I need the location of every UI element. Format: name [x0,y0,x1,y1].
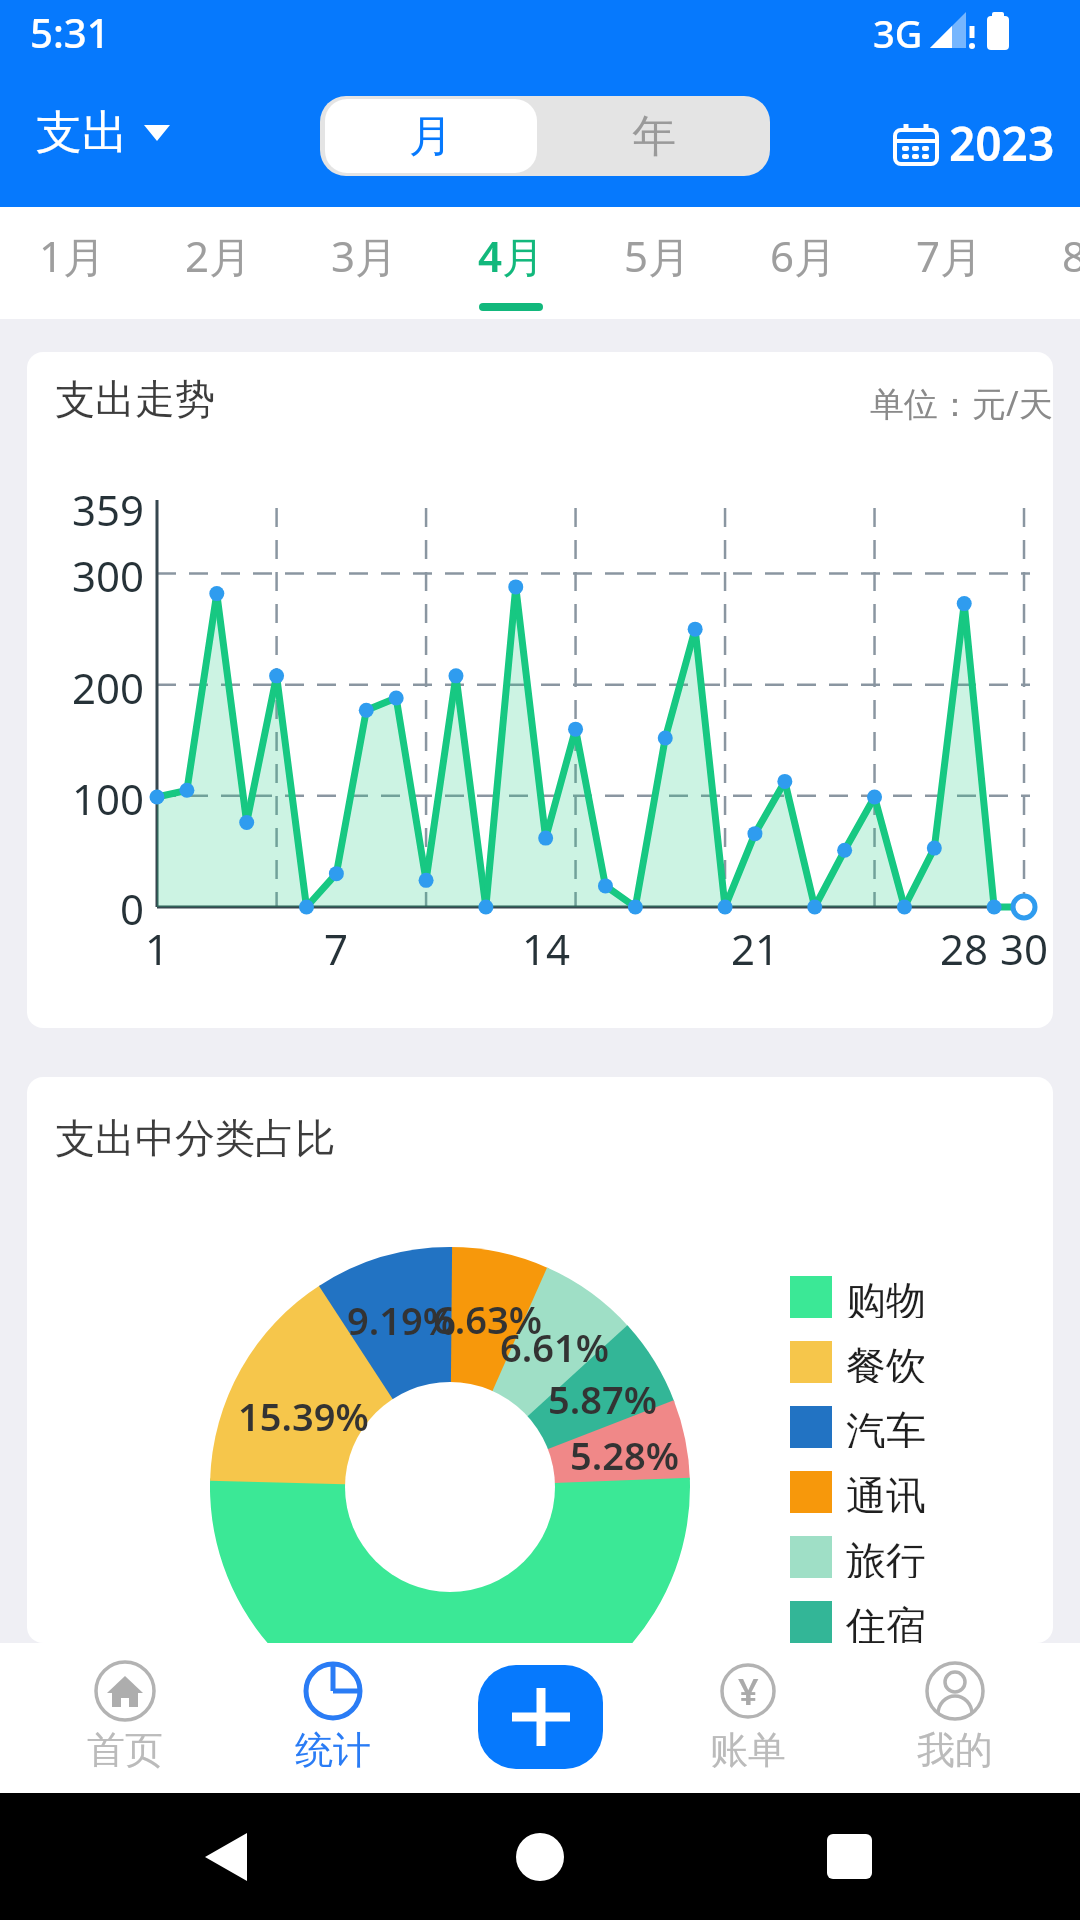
button[interactable]: ¥ [673,1643,823,1793]
staticText: 住宿 [846,1601,926,1643]
staticText: 通讯 [846,1471,926,1513]
button[interactable]: 5月 [584,207,730,319]
button[interactable]: 首页 [50,1643,200,1793]
staticText: 年 [632,109,676,164]
staticText: ¥ [738,1667,759,1716]
button[interactable]: 月 [325,99,537,173]
staticText: 2月 [185,227,252,284]
button[interactable]: 3月 [291,207,437,319]
button[interactable]: 6月 [730,207,876,319]
staticText: 6.61% [500,1321,609,1373]
staticText: 5.28% [570,1429,679,1481]
staticText: 359 [72,481,145,535]
button[interactable]: 7月 [876,207,1022,319]
staticText: 100 [72,770,145,824]
staticText: 300 [72,547,145,601]
staticText: 首页 [87,1726,163,1774]
staticText: 0 [120,880,145,934]
staticText: 支出 [36,104,128,162]
staticText: 28 [940,920,989,974]
staticText: 6.63% [433,1293,542,1345]
button[interactable]: 2月 [145,207,291,319]
staticText: 旅行 [846,1536,926,1578]
button[interactable]: 支出 [36,104,170,162]
staticText: 30 [1000,920,1049,974]
staticText: 餐饮 [846,1341,926,1383]
staticText: 21 [731,920,780,974]
button[interactable]: 4月 [438,207,584,319]
staticText: 支出中分类占比 [55,1113,335,1163]
staticText: 1月 [39,227,106,284]
staticText: 2023 [949,112,1055,175]
button[interactable]: 8月 [1022,207,1080,319]
staticText: 账单 [710,1726,786,1774]
button[interactable]: 2023 [893,112,1055,175]
button[interactable]: 我的 [880,1643,1030,1793]
staticText: 汽车 [846,1406,926,1448]
staticText: 6月 [770,227,837,284]
staticText: 5:31 [30,5,110,59]
staticText: 我的 [917,1726,993,1774]
button[interactable]: 年 [537,96,770,176]
staticText: 1 [145,920,170,974]
staticText: 15.39% [238,1390,369,1442]
button[interactable]: 统计 [258,1643,408,1793]
button[interactable] [478,1665,603,1769]
staticText: 8月 [1062,227,1080,284]
staticText: 7月 [916,227,983,284]
staticText: 统计 [295,1726,371,1774]
staticText: 7 [324,920,349,974]
staticText: 3月 [331,227,398,284]
staticText: 购物 [846,1276,926,1318]
staticText: 月 [409,109,453,164]
staticText: 单位：元/天 [870,380,1053,426]
staticText: 4月 [478,227,545,284]
staticText: 5月 [624,227,691,284]
staticText: 3G [873,7,923,59]
staticText: 支出走势 [55,374,215,424]
staticText: 9.19% [347,1294,456,1346]
button[interactable]: 1月 [0,207,145,319]
staticText: 200 [72,659,145,713]
staticText: 14 [522,920,571,974]
staticText: 5.87% [548,1373,657,1425]
